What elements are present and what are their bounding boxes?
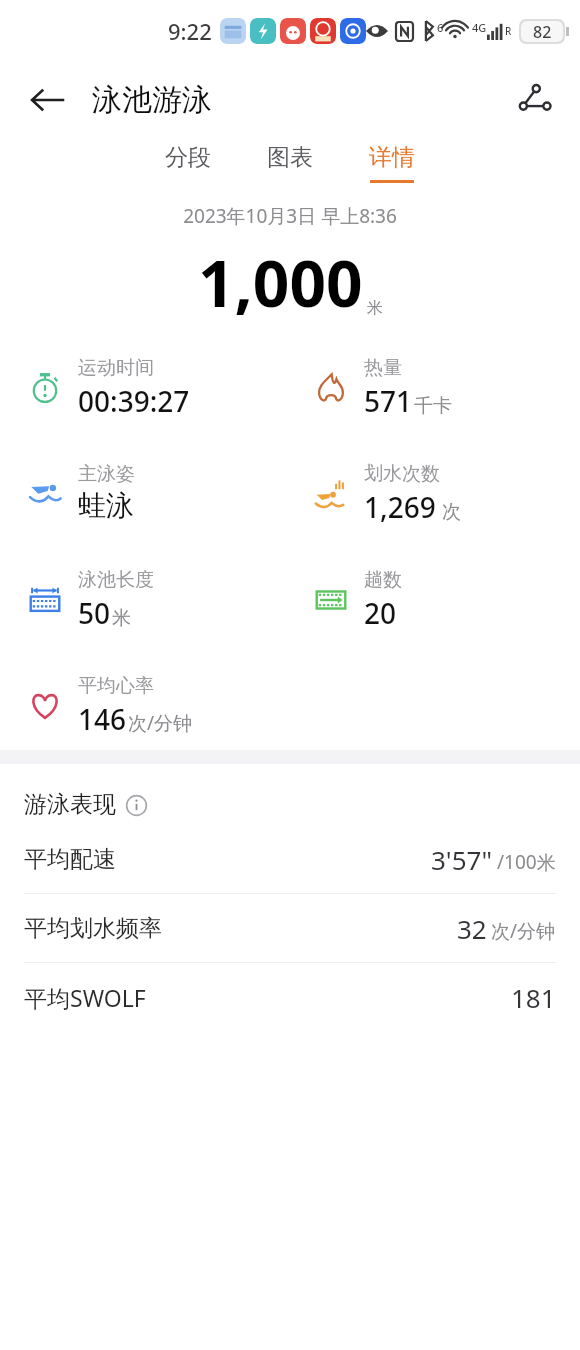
staticText: 运动时间 — [78, 356, 154, 380]
staticText: 平均配速 — [24, 845, 116, 874]
staticText: 4G — [472, 20, 487, 35]
staticText: 1,269 — [364, 488, 436, 526]
staticText: 9:22 — [168, 16, 212, 46]
button[interactable]: 分段 — [155, 137, 221, 189]
staticText: 泳池长度 — [78, 568, 154, 592]
staticText: 2023年10月3日 早上8:36 — [0, 203, 580, 229]
button[interactable]: Back — [22, 75, 72, 125]
staticText: 20 — [364, 594, 397, 632]
staticText: 00:39:27 — [78, 382, 190, 420]
staticText: 平均心率 — [78, 674, 154, 698]
staticText: 1,000 — [198, 239, 363, 326]
staticText: 米 — [112, 606, 131, 630]
staticText: 181 — [511, 980, 556, 1015]
button[interactable]: 平均配速 — [0, 825, 580, 894]
button[interactable]: Info — [124, 793, 148, 817]
staticText: 米 — [367, 298, 383, 318]
staticText: 32 — [457, 911, 487, 946]
button[interactable]: 平均划水频率 — [0, 894, 580, 963]
staticText: R — [505, 24, 512, 38]
button[interactable]: 运动时间 — [24, 356, 190, 420]
button[interactable]: 主泳姿 — [24, 462, 135, 523]
staticText: 热量 — [364, 356, 402, 380]
button[interactable]: 泳池长度 — [24, 568, 154, 632]
staticText: 详情 — [369, 143, 415, 172]
staticText: 次/分钟 — [128, 710, 193, 736]
staticText: 主泳姿 — [78, 462, 135, 486]
staticText: 平均SWOLF — [24, 982, 146, 1013]
staticText: 游泳表现 — [24, 790, 116, 819]
button[interactable]: 详情 — [359, 137, 425, 189]
staticText: 蛙泳 — [78, 488, 134, 523]
staticText: 泳池游泳 — [92, 81, 212, 119]
staticText: 千卡 — [414, 394, 452, 418]
staticText: 次/分钟 — [491, 918, 556, 944]
staticText: 6 — [437, 20, 444, 35]
staticText: 571 — [364, 382, 413, 420]
button[interactable]: 平均SWOLF — [0, 963, 580, 1031]
button[interactable]: 平均心率 — [24, 674, 193, 738]
button[interactable]: 划水次数 — [310, 462, 461, 526]
staticText: 50 — [78, 594, 111, 632]
staticText: 82 — [533, 21, 552, 42]
staticText: /100米 — [497, 849, 556, 875]
button[interactable]: 热量 — [310, 356, 452, 420]
staticText: 3'57" — [431, 842, 493, 877]
staticText: 146 — [78, 700, 127, 738]
button[interactable]: Share — [508, 74, 560, 126]
staticText: 趟数 — [364, 568, 402, 592]
staticText: 划水次数 — [364, 462, 440, 486]
button[interactable]: 趟数 — [310, 568, 402, 632]
staticText: 分段 — [165, 143, 211, 172]
staticText: 图表 — [267, 143, 313, 172]
staticText: 平均划水频率 — [24, 914, 162, 943]
staticText: 次 — [442, 500, 461, 524]
button[interactable]: 图表 — [257, 137, 323, 189]
